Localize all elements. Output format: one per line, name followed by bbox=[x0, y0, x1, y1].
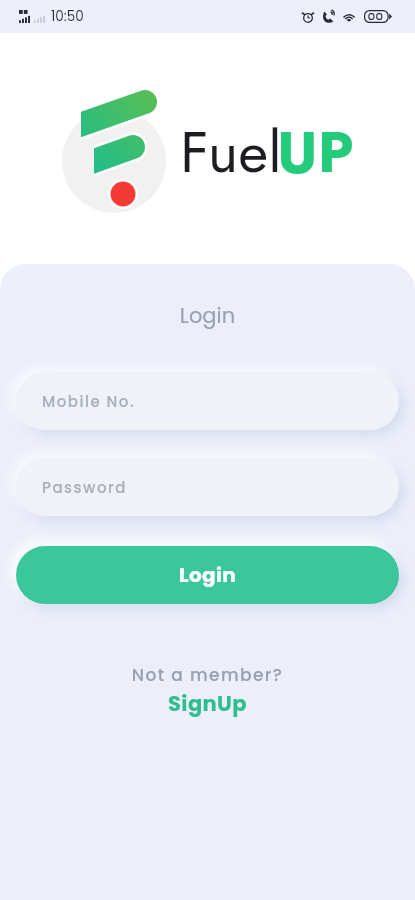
staticText: Fuel bbox=[180, 110, 282, 194]
staticText: 10:50 bbox=[51, 7, 84, 26]
button[interactable]: SignUp bbox=[154, 687, 261, 720]
staticText: SignUp bbox=[168, 689, 247, 718]
staticText: Login bbox=[179, 561, 237, 589]
staticText: Login bbox=[0, 301, 415, 330]
staticText: UP bbox=[277, 110, 354, 194]
staticText: Not a member? bbox=[0, 663, 415, 687]
button[interactable]: Password bbox=[6, 448, 409, 526]
staticText: Password bbox=[42, 477, 127, 498]
staticText: Mobile No. bbox=[42, 391, 136, 412]
button[interactable]: Login bbox=[6, 536, 409, 614]
button[interactable]: Mobile No. bbox=[6, 362, 409, 440]
